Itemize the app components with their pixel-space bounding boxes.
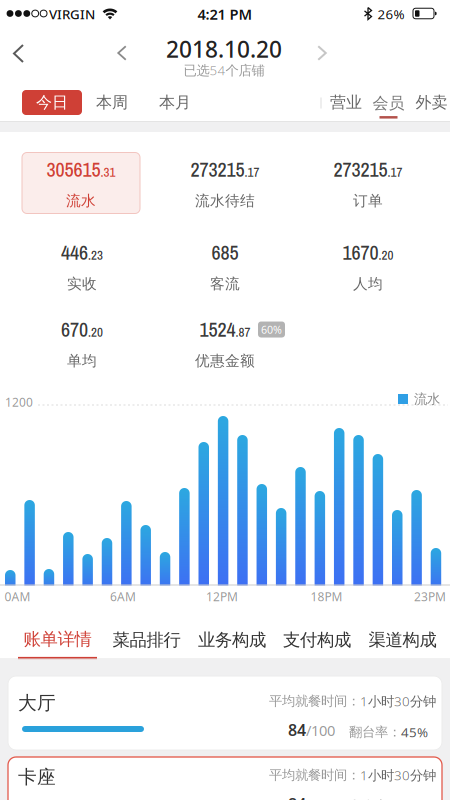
- staticText: 大厅: [18, 691, 56, 714]
- staticText: 单均: [67, 352, 97, 370]
- staticText: 273215: [190, 156, 244, 183]
- staticText: 2018.10.20: [166, 34, 282, 64]
- staticText: 实收: [67, 275, 97, 293]
- staticText: 卡座: [18, 765, 56, 788]
- button[interactable]: 账单详情: [18, 629, 97, 659]
- button[interactable]: 本月: [155, 89, 195, 116]
- staticText: 1小时30分钟: [360, 766, 436, 784]
- staticText: 1小时30分钟: [360, 692, 436, 710]
- staticText: 273215: [333, 156, 387, 183]
- button[interactable]: 卡座: [8, 757, 442, 800]
- staticText: 账单详情: [23, 629, 91, 650]
- staticText: 305615: [46, 156, 100, 183]
- staticText: 4:21 PM: [197, 4, 252, 24]
- staticText: .31: [100, 163, 115, 181]
- staticText: 渠道构成: [368, 629, 436, 651]
- staticText: 业务构成: [198, 629, 266, 651]
- staticText: 45%: [401, 723, 428, 741]
- staticText: 23PM: [414, 588, 446, 604]
- button[interactable]: 会员: [372, 93, 404, 119]
- staticText: 流水: [66, 192, 96, 210]
- staticText: 6AM: [110, 588, 136, 604]
- staticText: 本周: [96, 93, 128, 112]
- button[interactable]: 渠道构成: [364, 625, 440, 655]
- staticText: 优惠金额: [195, 352, 255, 370]
- staticText: 流水待结: [195, 192, 255, 210]
- staticText: 12PM: [206, 588, 238, 604]
- button[interactable]: 业务构成: [194, 625, 270, 655]
- staticText: 人均: [353, 275, 383, 293]
- staticText: 流水: [414, 391, 440, 407]
- button[interactable]: 本周: [92, 89, 132, 116]
- staticText: 支付构成: [283, 629, 351, 651]
- staticText: 1670: [342, 239, 378, 266]
- staticText: 84: [288, 793, 306, 800]
- button[interactable]: 大厅: [8, 676, 442, 750]
- staticText: .17: [244, 163, 259, 181]
- staticText: .20: [88, 323, 103, 341]
- button[interactable]: [110, 38, 134, 68]
- staticText: 平均就餐时间：: [269, 767, 360, 783]
- staticText: 本月: [159, 93, 191, 112]
- staticText: 60%: [261, 322, 282, 337]
- staticText: /100: [306, 720, 335, 740]
- staticText: VIRGIN: [49, 5, 95, 23]
- button[interactable]: 菜品排行: [108, 625, 184, 655]
- staticText: 0AM: [4, 588, 30, 604]
- staticText: 今日: [36, 93, 68, 112]
- staticText: 18PM: [310, 588, 342, 604]
- staticText: 已选54个店铺: [183, 61, 264, 79]
- staticText: 翻台率：: [349, 724, 401, 740]
- button[interactable]: 外卖: [411, 89, 450, 116]
- staticText: 营业: [330, 93, 362, 112]
- staticText: .23: [88, 246, 103, 264]
- staticText: 446: [61, 239, 88, 266]
- staticText: 685: [211, 239, 238, 266]
- staticText: 26%: [377, 5, 404, 23]
- staticText: 平均就餐时间：: [269, 693, 360, 709]
- button[interactable]: 营业: [326, 89, 366, 116]
- button[interactable]: [310, 38, 334, 68]
- staticText: 会员: [372, 93, 404, 113]
- staticText: 84: [288, 719, 306, 740]
- button[interactable]: 305615: [22, 152, 140, 213]
- staticText: 翻台率：: [349, 798, 401, 800]
- staticText: .87: [235, 323, 250, 341]
- staticText: 外卖: [415, 93, 447, 112]
- staticText: 670: [61, 316, 88, 343]
- staticText: .17: [387, 163, 402, 181]
- staticText: 菜品排行: [112, 629, 180, 651]
- button[interactable]: [6, 37, 31, 70]
- button[interactable]: 支付构成: [279, 625, 355, 655]
- staticText: 客流: [210, 275, 240, 293]
- staticText: 1200: [5, 394, 33, 410]
- staticText: 订单: [353, 192, 383, 210]
- staticText: .20: [378, 246, 393, 264]
- staticText: 1524: [199, 316, 235, 343]
- button[interactable]: 今日: [22, 90, 82, 115]
